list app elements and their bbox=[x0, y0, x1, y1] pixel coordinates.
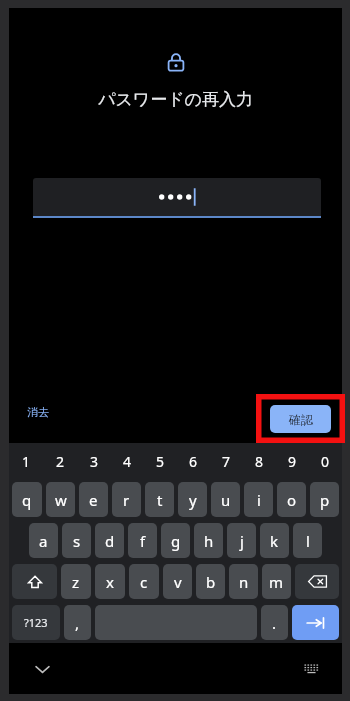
button[interactable]: u bbox=[211, 482, 240, 517]
staticText: g bbox=[171, 531, 181, 551]
staticText: y bbox=[189, 490, 197, 510]
staticText: b bbox=[206, 572, 216, 592]
button[interactable]: n bbox=[229, 564, 258, 599]
button[interactable]: c bbox=[129, 564, 159, 599]
button[interactable]: d bbox=[95, 523, 124, 558]
button[interactable]: b bbox=[196, 564, 225, 599]
staticText: h bbox=[204, 531, 214, 551]
button[interactable]: a bbox=[29, 523, 58, 558]
staticText: e bbox=[89, 490, 98, 510]
staticText: 2 bbox=[56, 452, 65, 471]
button[interactable]: h bbox=[194, 523, 223, 558]
staticText: 3 bbox=[90, 452, 99, 471]
button[interactable]: . bbox=[261, 605, 288, 640]
staticText: q bbox=[22, 490, 32, 510]
button[interactable]: y bbox=[178, 482, 207, 517]
button[interactable]: 8 bbox=[243, 443, 276, 479]
button[interactable]: z bbox=[61, 564, 91, 599]
staticText: , bbox=[75, 613, 80, 633]
staticText: x bbox=[106, 572, 114, 592]
staticText: 4 bbox=[123, 452, 132, 471]
staticText: l bbox=[306, 531, 310, 551]
staticText: 0 bbox=[321, 452, 330, 471]
button[interactable]: g bbox=[161, 523, 190, 558]
staticText: a bbox=[39, 531, 48, 551]
button[interactable]: x bbox=[95, 564, 125, 599]
staticText: r bbox=[123, 490, 130, 510]
button[interactable]: 5 bbox=[144, 443, 177, 479]
staticText: u bbox=[221, 490, 231, 510]
button[interactable]: 3 bbox=[77, 443, 111, 479]
button[interactable]: p bbox=[310, 482, 339, 517]
button[interactable]: 消去 bbox=[21, 400, 55, 424]
staticText: 6 bbox=[189, 452, 198, 471]
staticText: n bbox=[239, 572, 249, 592]
staticText: m bbox=[269, 572, 284, 592]
button[interactable]: 6 bbox=[177, 443, 210, 479]
button[interactable]: f bbox=[128, 523, 157, 558]
button[interactable]: 確認 bbox=[270, 405, 331, 433]
staticText: i bbox=[257, 490, 261, 510]
staticText: 7 bbox=[222, 452, 231, 471]
staticText: j bbox=[240, 531, 244, 551]
button[interactable]: Enter bbox=[292, 605, 339, 640]
button[interactable]: e bbox=[79, 482, 108, 517]
staticText: d bbox=[105, 531, 115, 551]
other: Locked bbox=[163, 50, 189, 76]
button[interactable]: 0 bbox=[309, 443, 342, 479]
button[interactable]: 7 bbox=[210, 443, 243, 479]
staticText: w bbox=[55, 490, 67, 510]
staticText: p bbox=[320, 490, 330, 510]
staticText: z bbox=[72, 572, 80, 592]
button[interactable]: t bbox=[145, 482, 174, 517]
button[interactable]: k bbox=[260, 523, 289, 558]
button[interactable]: 1 bbox=[9, 443, 43, 479]
button[interactable]: , bbox=[64, 605, 91, 640]
staticText: t bbox=[157, 490, 163, 510]
staticText: v bbox=[174, 572, 182, 592]
button[interactable]: i bbox=[244, 482, 273, 517]
button[interactable]: Hide keyboard bbox=[25, 652, 59, 686]
staticText: 8 bbox=[255, 452, 264, 471]
button[interactable]: 2 bbox=[43, 443, 77, 479]
staticText: パスワードの再入力 bbox=[9, 89, 342, 110]
button[interactable]: q bbox=[12, 482, 42, 517]
button[interactable]: l bbox=[293, 523, 322, 558]
staticText: f bbox=[140, 531, 146, 551]
staticText: 消去 bbox=[27, 405, 49, 419]
staticText: 1 bbox=[22, 452, 31, 471]
staticText: 5 bbox=[156, 452, 165, 471]
button[interactable]: s bbox=[62, 523, 91, 558]
button[interactable]: ?123 bbox=[12, 605, 60, 640]
button[interactable]: Shift bbox=[12, 564, 57, 599]
button[interactable]: Switch keyboard bbox=[294, 652, 328, 686]
button[interactable] bbox=[33, 178, 321, 218]
button[interactable]: o bbox=[277, 482, 306, 517]
button[interactable]: 4 bbox=[111, 443, 144, 479]
button[interactable]: Backspace bbox=[295, 564, 339, 599]
staticText: 9 bbox=[288, 452, 297, 471]
staticText: ?123 bbox=[24, 615, 48, 630]
button[interactable]: 9 bbox=[276, 443, 309, 479]
staticText: c bbox=[140, 572, 148, 592]
staticText: o bbox=[287, 490, 297, 510]
button[interactable]: m bbox=[262, 564, 291, 599]
button[interactable]: v bbox=[163, 564, 192, 599]
staticText: 確認 bbox=[289, 412, 313, 427]
staticText: s bbox=[73, 531, 81, 551]
button[interactable]: r bbox=[112, 482, 141, 517]
staticText: . bbox=[272, 613, 277, 633]
button[interactable]: w bbox=[46, 482, 75, 517]
button[interactable]: j bbox=[227, 523, 256, 558]
staticText: k bbox=[270, 531, 279, 551]
